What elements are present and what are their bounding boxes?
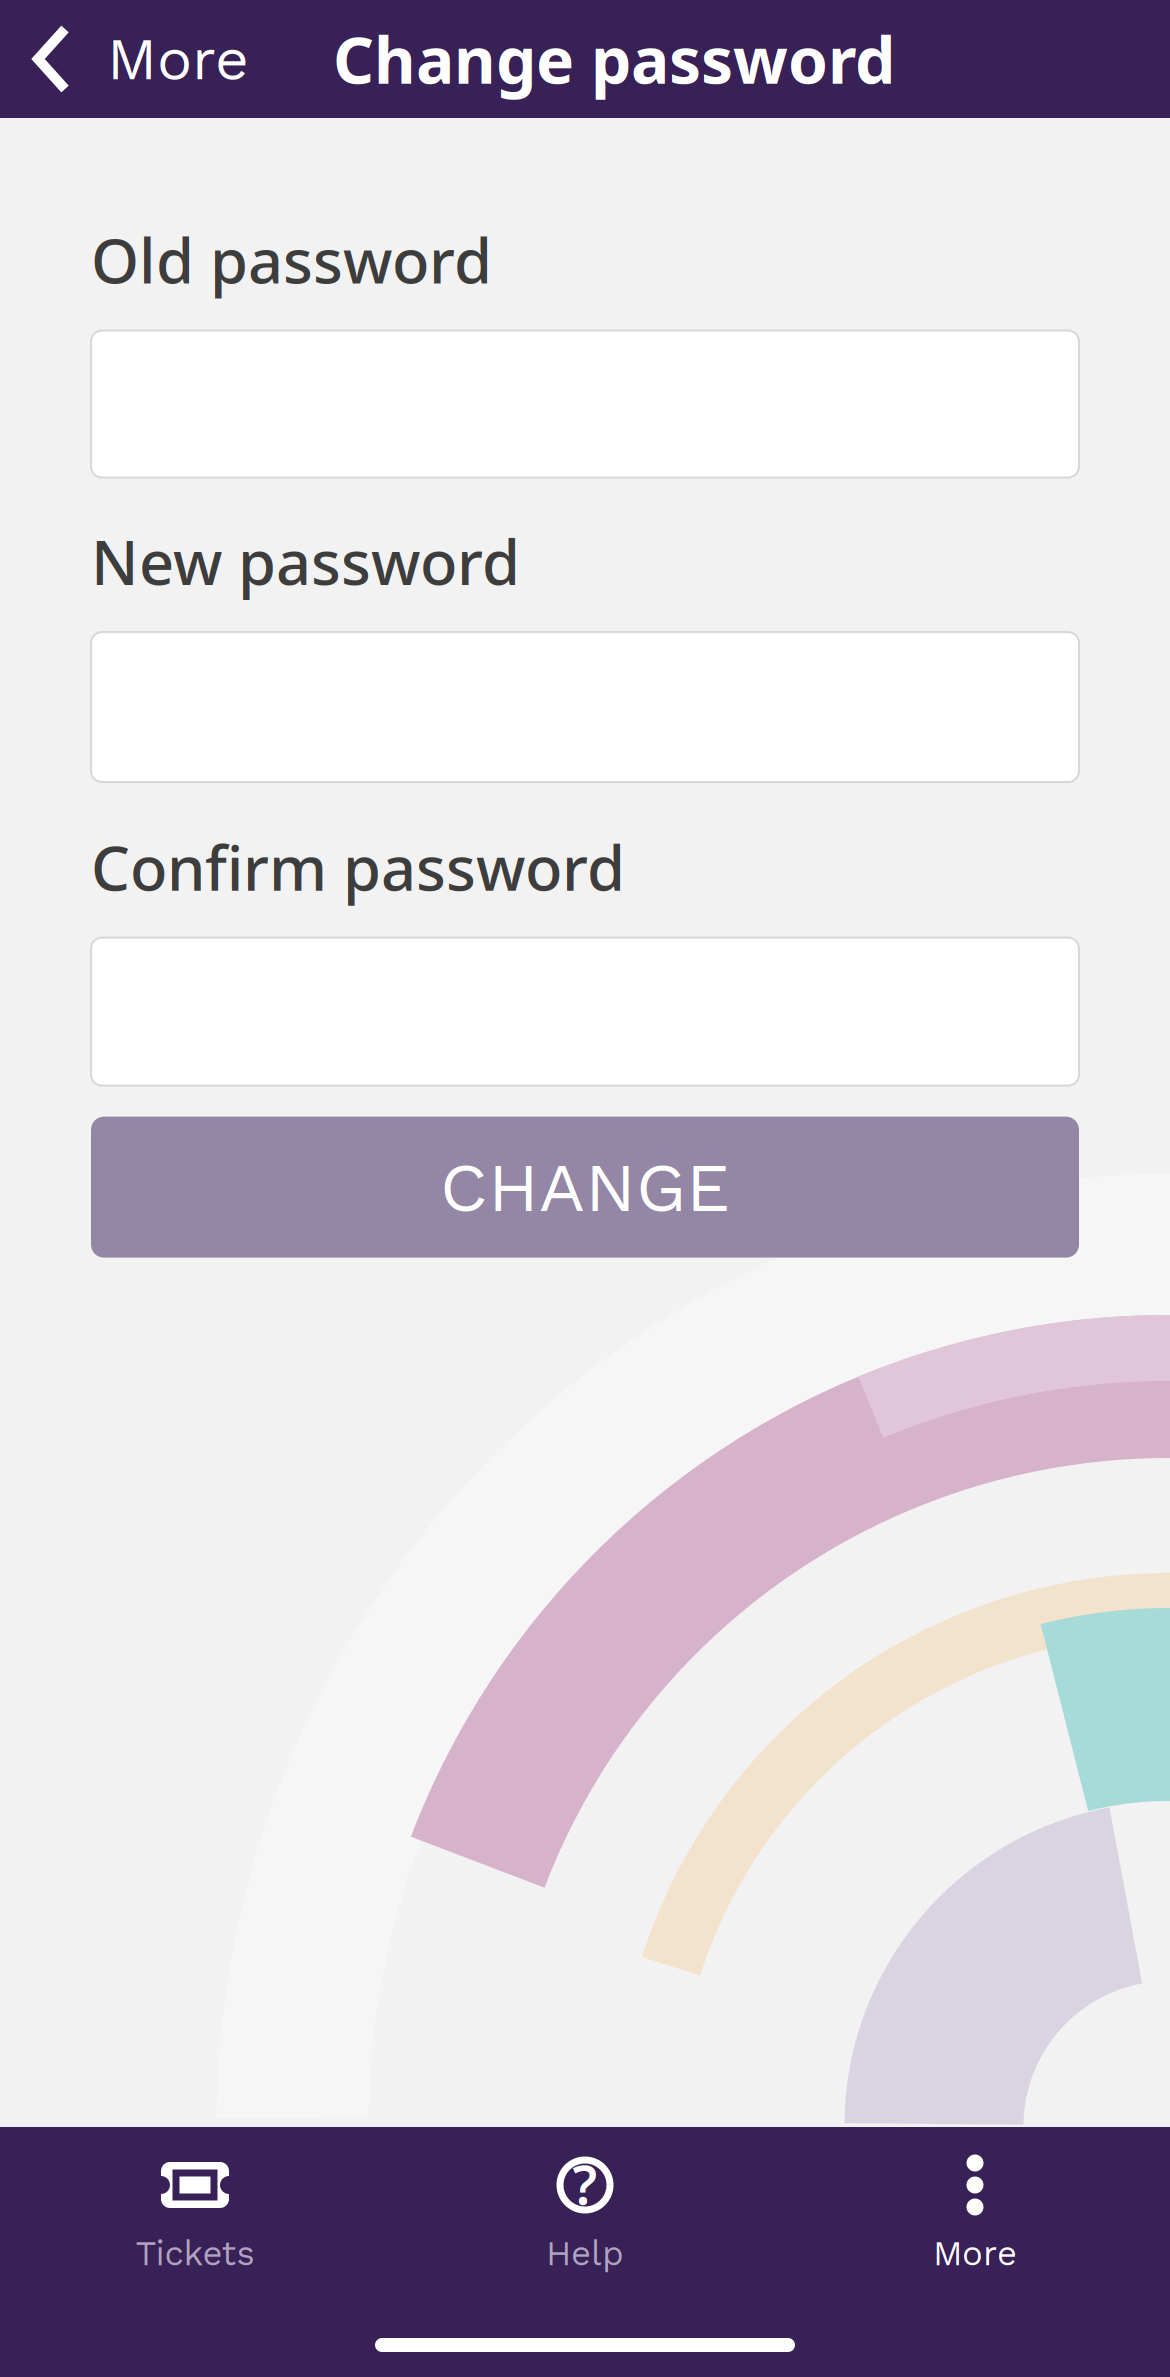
button[interactable]: CHANGE <box>91 1117 1079 1258</box>
button[interactable]: More <box>780 2155 1170 2274</box>
staticText: Tickets <box>135 2233 254 2274</box>
button[interactable]: ? <box>390 2155 780 2274</box>
staticText: CHANGE <box>440 1146 730 1228</box>
staticText: More <box>933 2233 1017 2274</box>
staticText: ? <box>572 2148 597 2220</box>
staticText: Old password <box>91 218 492 301</box>
button[interactable]: Tickets <box>0 2155 390 2274</box>
button[interactable]: More <box>0 0 273 118</box>
staticText: New password <box>91 519 520 603</box>
staticText: Change password <box>333 15 895 103</box>
staticText: More <box>107 25 249 93</box>
staticText: Confirm password <box>91 825 625 909</box>
staticText: Help <box>546 2233 624 2274</box>
